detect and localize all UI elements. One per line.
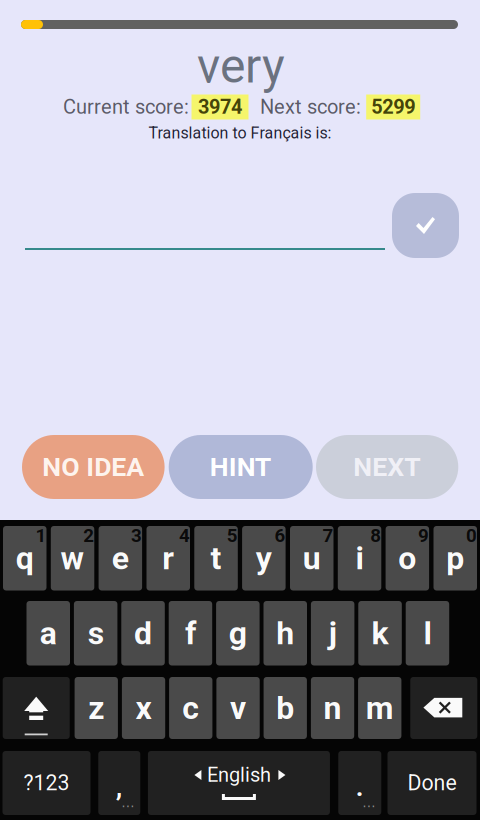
staticText: q bbox=[16, 539, 34, 577]
button[interactable]: ?123 bbox=[2, 751, 90, 815]
button[interactable]: x bbox=[122, 677, 165, 739]
staticText: v bbox=[230, 689, 246, 727]
staticText: u bbox=[303, 539, 321, 577]
button[interactable]: Delete bbox=[410, 677, 477, 739]
button[interactable]: j bbox=[311, 601, 354, 665]
button[interactable]: ⋯ bbox=[338, 751, 381, 815]
staticText: 1 bbox=[35, 525, 46, 546]
staticText: t bbox=[211, 539, 222, 577]
staticText: 9 bbox=[418, 525, 429, 546]
staticText: d bbox=[134, 614, 152, 652]
staticText: g bbox=[229, 614, 247, 652]
staticText: Next score: bbox=[260, 95, 361, 119]
staticText: o bbox=[398, 539, 416, 577]
staticText: Translation to Français is: bbox=[148, 124, 331, 142]
button[interactable]: s bbox=[74, 601, 117, 665]
staticText: s bbox=[88, 614, 104, 652]
button[interactable]: 3 bbox=[99, 526, 142, 590]
button[interactable]: n bbox=[311, 677, 354, 739]
staticText: 6 bbox=[275, 525, 286, 546]
button[interactable]: 6 bbox=[242, 526, 286, 590]
staticText: 8 bbox=[370, 525, 381, 546]
staticText: 5 bbox=[227, 525, 238, 546]
staticText: 2 bbox=[83, 525, 94, 546]
staticText: e bbox=[112, 539, 129, 577]
button[interactable]: ⋯ bbox=[98, 751, 140, 815]
staticText: . bbox=[356, 771, 364, 803]
staticText: i bbox=[356, 539, 364, 577]
button[interactable]: g bbox=[216, 601, 260, 665]
staticText: w bbox=[60, 539, 84, 577]
staticText: b bbox=[276, 689, 294, 727]
staticText: Current score: bbox=[63, 95, 189, 119]
button[interactable]: Done bbox=[387, 751, 476, 815]
staticText: z bbox=[88, 689, 104, 727]
button[interactable]: c bbox=[169, 677, 212, 739]
button[interactable]: z bbox=[75, 677, 118, 739]
staticText: a bbox=[40, 614, 57, 652]
staticText: NO IDEA bbox=[42, 451, 144, 483]
staticText: 3974 bbox=[198, 95, 242, 119]
staticText: ?123 bbox=[23, 770, 69, 795]
button[interactable]: 5 bbox=[194, 526, 238, 590]
staticText: l bbox=[423, 614, 431, 652]
button[interactable]: Shift bbox=[3, 677, 70, 739]
button[interactable]: 9 bbox=[386, 526, 429, 590]
staticText: NEXT bbox=[353, 451, 421, 483]
staticText: Done bbox=[407, 770, 456, 795]
button[interactable]: HINT bbox=[169, 435, 313, 499]
staticText: 4 bbox=[179, 525, 190, 546]
staticText: h bbox=[276, 614, 294, 652]
staticText: 5299 bbox=[371, 95, 415, 119]
staticText: HINT bbox=[210, 451, 272, 483]
button[interactable]: m bbox=[358, 677, 401, 739]
staticText: y bbox=[256, 539, 272, 577]
staticText: 0 bbox=[466, 525, 477, 546]
button[interactable]: Space bbox=[148, 751, 330, 815]
staticText: p bbox=[446, 539, 464, 577]
staticText: 3 bbox=[131, 525, 142, 546]
staticText: c bbox=[182, 689, 199, 727]
staticText: ⋯ bbox=[362, 798, 375, 814]
button[interactable]: 0 bbox=[433, 526, 477, 590]
button[interactable]: 2 bbox=[51, 526, 94, 590]
button[interactable]: 4 bbox=[146, 526, 190, 590]
staticText: j bbox=[329, 614, 337, 652]
button[interactable]: f bbox=[169, 601, 212, 665]
staticText: m bbox=[366, 689, 394, 727]
button[interactable]: 7 bbox=[290, 526, 333, 590]
staticText: r bbox=[162, 539, 174, 577]
button[interactable]: 8 bbox=[338, 526, 381, 590]
button[interactable]: h bbox=[263, 601, 307, 665]
button[interactable]: NO IDEA bbox=[22, 435, 165, 499]
button[interactable]: k bbox=[358, 601, 402, 665]
staticText: k bbox=[372, 614, 389, 652]
button[interactable]: b bbox=[264, 677, 307, 739]
button[interactable]: Check answer bbox=[392, 193, 459, 258]
staticText: n bbox=[323, 689, 341, 727]
staticText: very bbox=[197, 38, 285, 94]
staticText: , bbox=[116, 771, 123, 803]
staticText: English bbox=[207, 763, 271, 787]
staticText: f bbox=[185, 614, 196, 652]
staticText: 7 bbox=[322, 525, 333, 546]
button[interactable]: d bbox=[121, 601, 165, 665]
staticText: ⋯ bbox=[121, 798, 134, 814]
button[interactable]: 1 bbox=[3, 526, 46, 590]
staticText: x bbox=[136, 689, 152, 727]
button[interactable]: NEXT bbox=[316, 435, 458, 499]
button[interactable]: v bbox=[216, 677, 260, 739]
button[interactable]: l bbox=[406, 601, 449, 665]
button[interactable]: a bbox=[26, 601, 70, 665]
